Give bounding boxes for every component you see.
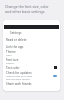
button[interactable]: Read or delete [3,36,60,43]
button[interactable]: Text color [3,64,60,71]
staticText: Settings [10,31,22,35]
button[interactable]: Link the app [3,43,60,50]
button[interactable]: Font size [3,58,60,65]
staticText: Link the app [6,45,24,49]
button[interactable]: Settings [3,29,60,36]
staticText: and other basic settings [5,9,45,14]
staticText: Keep the app up to date with the latest … [6,75,32,81]
staticText: Font size [6,58,19,62]
staticText: Check for updates [6,71,32,75]
other: Auto update toggle [53,75,57,77]
staticText: Read or delete [6,38,27,42]
staticText: Default [6,62,14,65]
staticText: Share with friends [6,82,32,86]
staticText: Change the font size, color [5,4,49,9]
button[interactable]: Check for updates [3,71,60,81]
staticText: Theme [6,50,16,54]
button[interactable]: Theme [3,50,60,57]
button[interactable]: Share with friends [3,80,60,87]
staticText: Text color [6,66,20,70]
staticText: Light [6,54,12,57]
